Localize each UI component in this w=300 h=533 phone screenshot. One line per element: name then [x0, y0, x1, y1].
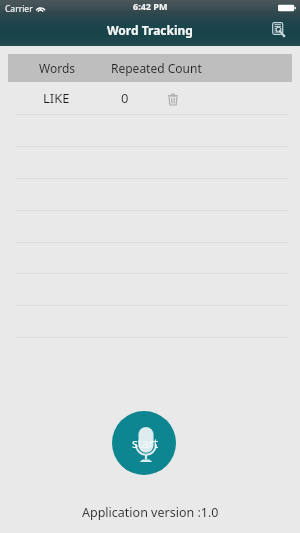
- button[interactable]: Delete word: [164, 89, 182, 107]
- staticText: LIKE: [43, 89, 70, 107]
- staticText: 6:42 PM: [133, 0, 168, 12]
- staticText: Words: [39, 60, 76, 76]
- staticText: Word Tracking: [107, 22, 193, 38]
- button[interactable]: Start recording: [112, 411, 176, 475]
- button[interactable]: Search words: [270, 22, 287, 39]
- staticText: Repeated Count: [111, 60, 202, 76]
- staticText: 0: [121, 89, 129, 107]
- staticText: Application version :1.0: [82, 504, 219, 521]
- staticText: Carrier: [5, 3, 33, 15]
- button[interactable]: LIKE: [0, 82, 300, 114]
- staticText: start: [132, 435, 159, 451]
